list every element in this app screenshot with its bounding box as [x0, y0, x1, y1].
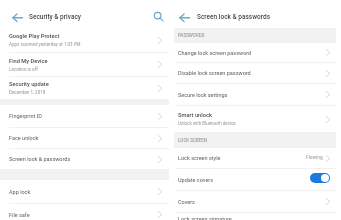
- staticText: File safe: [9, 212, 30, 218]
- button[interactable]: Secure lock settings: [174, 84, 336, 105]
- button[interactable]: Screen lock & passwords: [0, 149, 169, 169]
- button[interactable]: Lock screen style: [174, 148, 336, 168]
- staticText: Google Play Protect: [9, 33, 60, 40]
- staticText: Apps scanned yesterday at 1:03 PM: [9, 42, 81, 47]
- staticText: Covers: [178, 199, 195, 205]
- button[interactable]: Face unlock: [0, 128, 169, 148]
- button[interactable]: File safe: [0, 204, 169, 220]
- staticText: Unlock with Bluetooth device: [178, 121, 236, 126]
- button[interactable]: Security update: [0, 77, 169, 99]
- staticText: Lock screen style: [178, 155, 221, 161]
- staticText: Disable lock screen password: [178, 70, 251, 76]
- staticText: Update covers: [178, 177, 214, 183]
- button[interactable]: Lock screen signature: [174, 213, 336, 220]
- staticText: Flowing: [306, 155, 323, 161]
- button[interactable]: Find My Device: [0, 53, 169, 76]
- button[interactable]: Fingerprint ID: [0, 105, 169, 127]
- staticText: Find My Device: [9, 58, 48, 65]
- button[interactable]: Covers: [174, 191, 336, 212]
- staticText: LOCK SCREEN: [178, 138, 207, 143]
- staticText: Change lock screen password: [178, 50, 252, 56]
- staticText: Security & privacy: [29, 13, 81, 21]
- button[interactable]: Back: [8, 8, 26, 26]
- staticText: Face unlock: [9, 135, 39, 141]
- staticText: Secure lock settings: [178, 92, 228, 98]
- button[interactable]: App lock: [0, 180, 169, 203]
- button[interactable]: Update covers: [174, 169, 336, 190]
- staticText: Screen lock & passwords: [197, 13, 271, 21]
- button[interactable]: Back: [175, 8, 193, 26]
- button[interactable]: Google Play Protect: [0, 28, 169, 52]
- staticText: Security update: [9, 81, 49, 88]
- staticText: December 1, 2018: [9, 90, 46, 95]
- staticText: Screen lock & passwords: [9, 156, 71, 162]
- staticText: App lock: [9, 189, 31, 195]
- staticText: Location is off: [9, 67, 38, 72]
- button[interactable]: Disable lock screen password: [174, 63, 336, 83]
- staticText: PASSWORDS: [178, 33, 205, 38]
- button[interactable]: Update covers toggle: [310, 173, 330, 183]
- staticText: Lock screen signature: [178, 216, 232, 220]
- staticText: Fingerprint ID: [9, 113, 42, 119]
- button[interactable]: Smart unlock: [174, 106, 336, 132]
- button[interactable]: Search: [149, 7, 167, 25]
- button[interactable]: Change lock screen password: [174, 43, 336, 62]
- staticText: Smart unlock: [178, 112, 212, 119]
